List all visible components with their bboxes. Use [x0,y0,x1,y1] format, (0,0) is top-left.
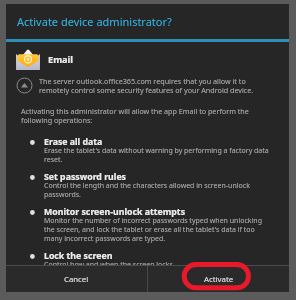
staticText: Control how and when the screen locks. [44,260,175,265]
staticText: Lock the screen [44,250,113,262]
staticText: Monitor screen-unlock attempts [44,206,186,218]
staticText: Set password rules [44,171,126,183]
button[interactable]: Cancel [6,266,147,292]
staticText: Control the length and the characters al… [44,181,271,199]
staticText: Activate [204,274,234,285]
staticText: Erase the tablet's data without warning … [44,146,271,164]
button[interactable]: Activate [148,266,289,292]
staticText: The server outlook.office365.com require… [39,76,264,96]
staticText: Email [48,53,74,66]
other: Collapse description [16,77,33,94]
staticText: Monitor the number of incorrect password… [44,216,271,243]
staticText: Activate device administrator? [17,14,172,29]
staticText: Erase all data [44,136,103,148]
staticText: Cancel [64,274,89,285]
staticText: Activating this administrator will allow… [21,106,265,126]
